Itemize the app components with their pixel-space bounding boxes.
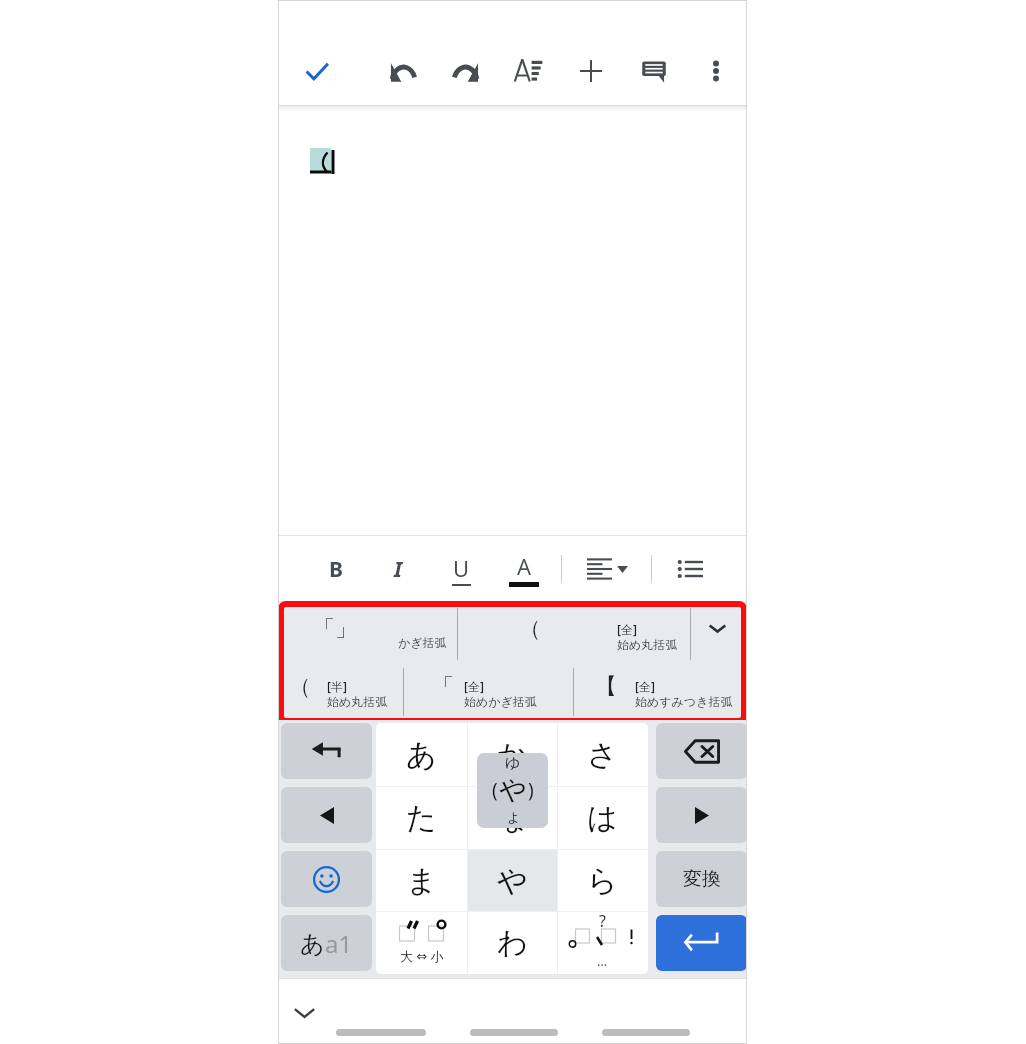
staticText: I <box>394 555 403 584</box>
staticText: （ <box>519 615 541 643</box>
staticText: かぎ括弧 <box>398 635 447 650</box>
button[interactable] <box>508 603 688 655</box>
staticText: [全] <box>617 621 637 637</box>
button[interactable]: Bulleted list <box>668 547 712 591</box>
button[interactable]: Italic <box>376 547 420 591</box>
button[interactable]: Switch input mode <box>281 915 372 971</box>
button[interactable]: Convert <box>656 851 747 907</box>
staticText: 「 <box>432 673 454 701</box>
staticText: U <box>453 553 470 583</box>
button[interactable]: Insert <box>569 49 613 93</box>
staticText: た <box>406 799 437 837</box>
staticText: ょ <box>505 807 522 827</box>
button[interactable]: Done <box>295 49 339 93</box>
staticText: は <box>587 799 618 837</box>
button[interactable]: Text formatting <box>506 49 550 93</box>
button[interactable]: More options <box>694 49 738 93</box>
button[interactable]: Underline <box>439 547 483 591</box>
staticText: 始めかぎ括弧 <box>464 694 537 709</box>
button[interactable]: た <box>376 786 467 849</box>
staticText: [半] <box>327 678 347 694</box>
button[interactable]: Emoji <box>281 851 372 907</box>
staticText: や <box>497 862 528 900</box>
button[interactable] <box>584 661 744 713</box>
staticText: [全] <box>635 678 655 694</box>
button[interactable]: Cursor left <box>281 787 372 843</box>
button[interactable]: More candidates <box>693 604 741 652</box>
button[interactable]: Punctuation <box>557 911 648 974</box>
button[interactable]: わ <box>467 911 558 974</box>
button[interactable]: な <box>467 786 558 849</box>
button[interactable] <box>278 661 402 713</box>
button[interactable]: ら <box>557 849 648 912</box>
staticText: （ <box>289 673 311 701</box>
staticText: ? <box>599 910 606 928</box>
button[interactable]: Alignment <box>585 547 629 591</box>
staticText: [全] <box>464 678 484 694</box>
staticText: 始め丸括弧 <box>617 637 678 652</box>
button[interactable]: Backspace <box>656 723 747 779</box>
button[interactable]: Hide keyboard <box>282 991 326 1035</box>
staticText: 変換 <box>683 867 721 891</box>
staticText: ゆ <box>505 754 521 773</box>
button[interactable]: は <box>557 786 648 849</box>
staticText: ) <box>528 777 534 803</box>
staticText: ま <box>406 862 437 900</box>
button[interactable]: Text colour <box>502 547 546 591</box>
staticText: さ <box>587 736 618 774</box>
button[interactable]: Enter <box>656 915 747 971</box>
staticText: か <box>497 736 528 774</box>
staticText: 大 ⇔ 小 <box>400 947 444 963</box>
button[interactable]: Cursor right <box>656 787 747 843</box>
button[interactable]: Dakuten and small kana <box>376 911 467 974</box>
staticText: ( <box>492 777 498 803</box>
button[interactable]: ま <box>376 849 467 912</box>
button[interactable]: Comment <box>632 49 676 93</box>
staticText: 始め丸括弧 <box>327 694 388 709</box>
button[interactable]: や <box>467 849 558 912</box>
staticText: あ <box>300 929 325 959</box>
button[interactable]: Navigation <box>470 1029 558 1036</box>
button[interactable]: Navigation <box>602 1029 690 1036</box>
button[interactable] <box>313 603 455 655</box>
staticText: 【 <box>595 673 617 701</box>
button[interactable] <box>421 661 572 713</box>
staticText: 始めすみつき括弧 <box>635 694 733 709</box>
staticText: ら <box>587 862 618 900</box>
staticText: や <box>499 773 527 807</box>
button[interactable]: さ <box>557 723 648 786</box>
staticText: … <box>597 952 608 966</box>
button[interactable]: Bold <box>314 547 358 591</box>
button[interactable]: Navigation <box>336 1029 426 1036</box>
button[interactable]: Redo <box>444 49 488 93</box>
staticText: A <box>517 551 532 581</box>
button[interactable]: Delete previous <box>281 723 372 779</box>
button[interactable]: あ <box>376 723 467 786</box>
button[interactable]: Undo <box>381 49 425 93</box>
staticText: a1 <box>325 927 353 960</box>
staticText: 「」 <box>313 615 357 643</box>
staticText: あ <box>406 736 437 774</box>
staticText: な <box>497 799 528 837</box>
staticText: B <box>329 555 343 584</box>
button[interactable]: か <box>467 723 558 786</box>
staticText: わ <box>497 924 528 962</box>
